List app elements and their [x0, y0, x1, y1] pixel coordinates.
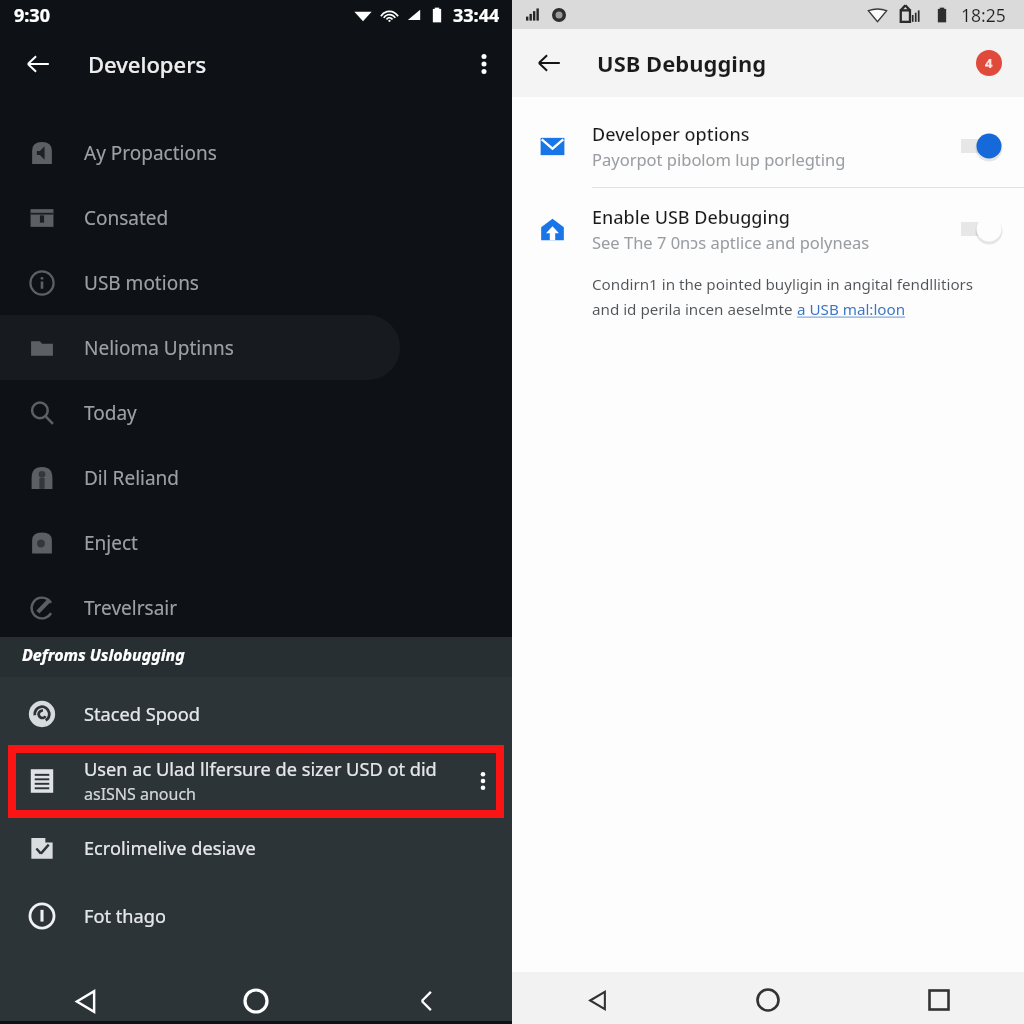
- button[interactable]: More options: [456, 36, 512, 92]
- button[interactable]: Home: [170, 981, 341, 1021]
- button[interactable]: Back: [0, 981, 170, 1021]
- staticText: Developer options: [592, 122, 750, 147]
- staticText: Payorpot pibolom lup porlegting: [592, 148, 846, 170]
- button[interactable]: Back: [512, 976, 682, 1024]
- staticText: a USB mal:loon: [797, 299, 906, 320]
- button[interactable]: Developer options: [512, 105, 1024, 187]
- staticText: USB Debugging: [597, 48, 767, 78]
- staticText: Enable USB Debugging: [592, 205, 790, 230]
- button[interactable]: Recents: [341, 981, 512, 1021]
- staticText: Condirn1 in the pointed buyligin in angi…: [592, 274, 974, 295]
- button[interactable]: Enable USB Debugging: [512, 188, 1024, 270]
- staticText: Ay Propactions: [84, 140, 217, 166]
- staticText: Staced Spood: [84, 702, 201, 727]
- button[interactable]: Alert: [976, 50, 1002, 76]
- staticText: 9:30: [14, 3, 50, 28]
- staticText: Dil Reliand: [84, 465, 180, 491]
- button[interactable]: Toggle Developer options: [941, 126, 1013, 166]
- staticText: See The 7 0nɔs aptlice and polyneas: [592, 231, 870, 253]
- staticText: Ecrolimelive desiave: [84, 836, 256, 861]
- staticText: Today: [84, 400, 137, 426]
- button[interactable]: Ecrolimelive desiave: [0, 814, 512, 882]
- button[interactable]: Back: [10, 36, 66, 92]
- button[interactable]: Recents: [853, 976, 1024, 1024]
- button[interactable]: Back: [521, 35, 577, 91]
- staticText: Usen ac Ulad llfersure de sizer USD ot d…: [84, 757, 437, 782]
- button[interactable]: Toggle Enable USB Debugging: [941, 209, 1013, 249]
- button[interactable]: Home: [682, 976, 853, 1024]
- staticText: USB motions: [84, 270, 199, 296]
- button[interactable]: Fot thago: [0, 882, 512, 950]
- button[interactable]: Nelioma Uptinns: [0, 315, 400, 380]
- staticText: 18:25: [961, 3, 1006, 27]
- button[interactable]: Today: [0, 380, 400, 445]
- button[interactable]: Trevelrsair: [0, 575, 400, 640]
- staticText: and id perila incen aeselmte: [592, 299, 797, 320]
- button[interactable]: Dil Reliand: [0, 445, 400, 510]
- button[interactable]: Consated: [0, 185, 400, 250]
- staticText: Developers: [88, 49, 207, 79]
- staticText: Consated: [84, 205, 169, 231]
- button[interactable]: Enject: [0, 510, 400, 575]
- staticText: asISNS anouch: [84, 783, 196, 805]
- staticText: Defroms Uslobugging: [22, 644, 185, 666]
- staticText: Trevelrsair: [84, 595, 178, 621]
- button[interactable]: More options: [454, 748, 512, 814]
- staticText: 4: [985, 54, 993, 72]
- button[interactable]: Ay Propactions: [0, 120, 400, 185]
- button[interactable]: USB motions: [0, 250, 400, 315]
- button[interactable]: Staced Spood: [0, 680, 512, 748]
- staticText: 33:44: [453, 3, 500, 28]
- staticText: Nelioma Uptinns: [84, 335, 234, 361]
- staticText: Enject: [84, 530, 138, 556]
- staticText: Fot thago: [84, 904, 166, 929]
- button[interactable]: Usen ac Ulad llfersure de sizer USD ot d…: [0, 748, 512, 814]
